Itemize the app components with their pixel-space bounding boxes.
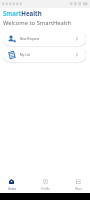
- staticText: More: [75, 187, 82, 191]
- button[interactable]: New Request: [3, 32, 86, 46]
- staticText: Welcome to SmartHealth: [3, 19, 71, 27]
- staticText: New Request: [20, 37, 40, 41]
- staticText: Home: [8, 187, 16, 191]
- button[interactable]: More: [67, 176, 90, 193]
- other: Home: [9, 179, 14, 184]
- button[interactable]: Profile: [34, 176, 57, 193]
- button[interactable]: Home: [0, 176, 23, 193]
- staticText: My List: [20, 53, 31, 57]
- button[interactable]: My List: [3, 48, 86, 62]
- staticText: SmartHealth: [3, 9, 42, 17]
- other: More: [76, 179, 81, 184]
- other: Profile: [43, 179, 48, 184]
- staticText: Profile: [41, 187, 50, 191]
